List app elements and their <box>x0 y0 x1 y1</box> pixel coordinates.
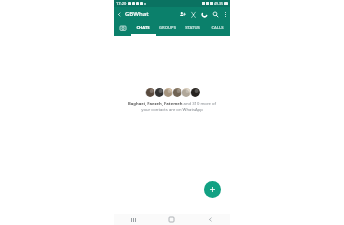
button[interactable]: Home <box>152 214 191 225</box>
staticText: 17:20 <box>116 1 127 6</box>
staticText: Baghaei, Faezeh, Fatemeh and 310 more of… <box>126 101 218 112</box>
staticText: CHATS <box>136 25 150 31</box>
button[interactable]: CALLS <box>205 21 230 34</box>
staticText: GROUPS <box>159 25 176 31</box>
staticText: STATUS <box>185 25 200 31</box>
button[interactable]: CHATS <box>131 21 155 34</box>
button[interactable]: Camera <box>114 21 131 34</box>
button[interactable]: Back <box>114 7 124 21</box>
staticText: CALLS <box>211 25 224 31</box>
button[interactable]: More options <box>221 7 229 21</box>
button[interactable]: Search <box>210 7 221 21</box>
button[interactable]: Back <box>191 214 230 225</box>
button[interactable]: Broadcast <box>188 7 199 21</box>
button[interactable]: New chat <box>204 181 221 198</box>
button[interactable]: Add contact <box>177 7 188 21</box>
button[interactable]: STATUS <box>180 21 205 34</box>
button[interactable]: Calls <box>199 7 210 21</box>
staticText: GBWhat <box>125 10 149 18</box>
staticText: 49.35 <box>214 1 223 6</box>
button[interactable]: GROUPS <box>155 21 180 34</box>
button[interactable]: Recents <box>114 214 152 225</box>
